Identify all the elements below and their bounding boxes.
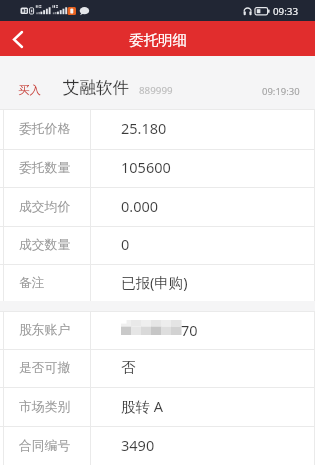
button[interactable]: 成交数量 [0, 226, 315, 264]
staticText: 市场类别 [19, 399, 71, 415]
staticText: 09:19:30 [262, 85, 300, 98]
staticText: 105600 [121, 157, 171, 177]
button[interactable]: 是否可撤 [0, 349, 315, 387]
staticText: 09:33 [273, 5, 299, 18]
staticText: 股东账户 [19, 322, 71, 338]
staticText: 艾融软件 [63, 77, 129, 98]
button[interactable]: 委托价格 [0, 109, 315, 149]
button[interactable]: 成交均价 [0, 187, 315, 226]
staticText: 0 [121, 234, 130, 254]
staticText: 否 [121, 358, 136, 376]
staticText: 889999 [139, 84, 173, 97]
staticText: 25.180 [121, 118, 167, 138]
button[interactable]: 合同编号 [0, 426, 315, 465]
button[interactable]: Back [0, 21, 36, 56]
staticText: 备注 [19, 275, 45, 291]
staticText: 股转 A [121, 396, 164, 416]
staticText: 成交均价 [19, 199, 71, 215]
staticText: 委托明细 [129, 31, 187, 49]
button[interactable]: 委托数量 [0, 149, 315, 187]
button[interactable]: 备注 [0, 264, 315, 301]
staticText: 委托价格 [19, 121, 71, 137]
staticText: 0.000 [121, 196, 159, 216]
staticText: 是否可撤 [19, 360, 71, 376]
staticText: 买入 [18, 83, 41, 97]
staticText: 合同编号 [19, 438, 71, 454]
staticText: 成交数量 [19, 237, 71, 253]
button[interactable]: 市场类别 [0, 387, 315, 426]
staticText: 70 [181, 320, 198, 340]
staticText: 已报(申购) [121, 272, 188, 292]
staticText: 委托数量 [19, 160, 71, 176]
staticText: 3490 [121, 435, 155, 455]
button[interactable]: 股东账户 [0, 311, 315, 349]
